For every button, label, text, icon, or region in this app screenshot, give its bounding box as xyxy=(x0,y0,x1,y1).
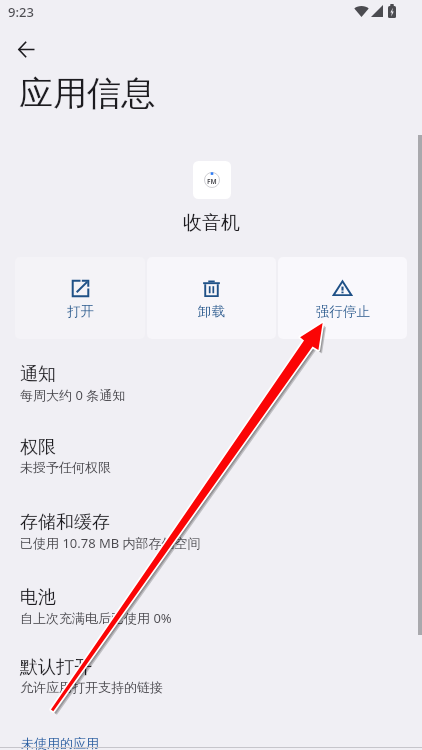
staticText: 9:23 xyxy=(8,3,34,21)
button[interactable]: 未使用的应用 xyxy=(0,728,422,750)
staticText: FM xyxy=(207,177,217,186)
staticText: 未授予任何权限 xyxy=(20,459,111,475)
button[interactable]: 通知 xyxy=(0,349,422,407)
button[interactable]: 强行停止 xyxy=(278,257,407,339)
button[interactable]: 权限 xyxy=(0,422,422,480)
staticText: 收音机 xyxy=(183,211,240,235)
button[interactable]: Back xyxy=(8,31,44,67)
button[interactable]: 卸载 xyxy=(147,257,276,339)
button[interactable]: 电池 xyxy=(0,572,422,630)
staticText: 自上次充满电后已使用 0% xyxy=(20,609,172,627)
staticText: 默认打开 xyxy=(20,656,92,679)
button[interactable]: 存储和缓存 xyxy=(0,497,422,555)
button[interactable]: 默认打开 xyxy=(0,642,422,700)
staticText: 电池 xyxy=(20,586,56,609)
staticText: 权限 xyxy=(20,436,56,459)
staticText: 未使用的应用 xyxy=(21,735,99,750)
button[interactable]: 打开 xyxy=(15,257,145,339)
staticText: 卸载 xyxy=(198,303,225,320)
staticText: 存储和缓存 xyxy=(20,511,110,534)
staticText: 通知 xyxy=(20,363,56,386)
staticText: 强行停止 xyxy=(316,303,370,320)
staticText: 每周大约 0 条通知 xyxy=(20,386,126,404)
staticText: 应用信息 xyxy=(19,72,155,115)
staticText: 允许应用打开支持的链接 xyxy=(20,679,163,695)
staticText: 已使用 10.78 MB 内部存储空间 xyxy=(20,534,201,552)
staticText: 打开 xyxy=(67,303,94,320)
